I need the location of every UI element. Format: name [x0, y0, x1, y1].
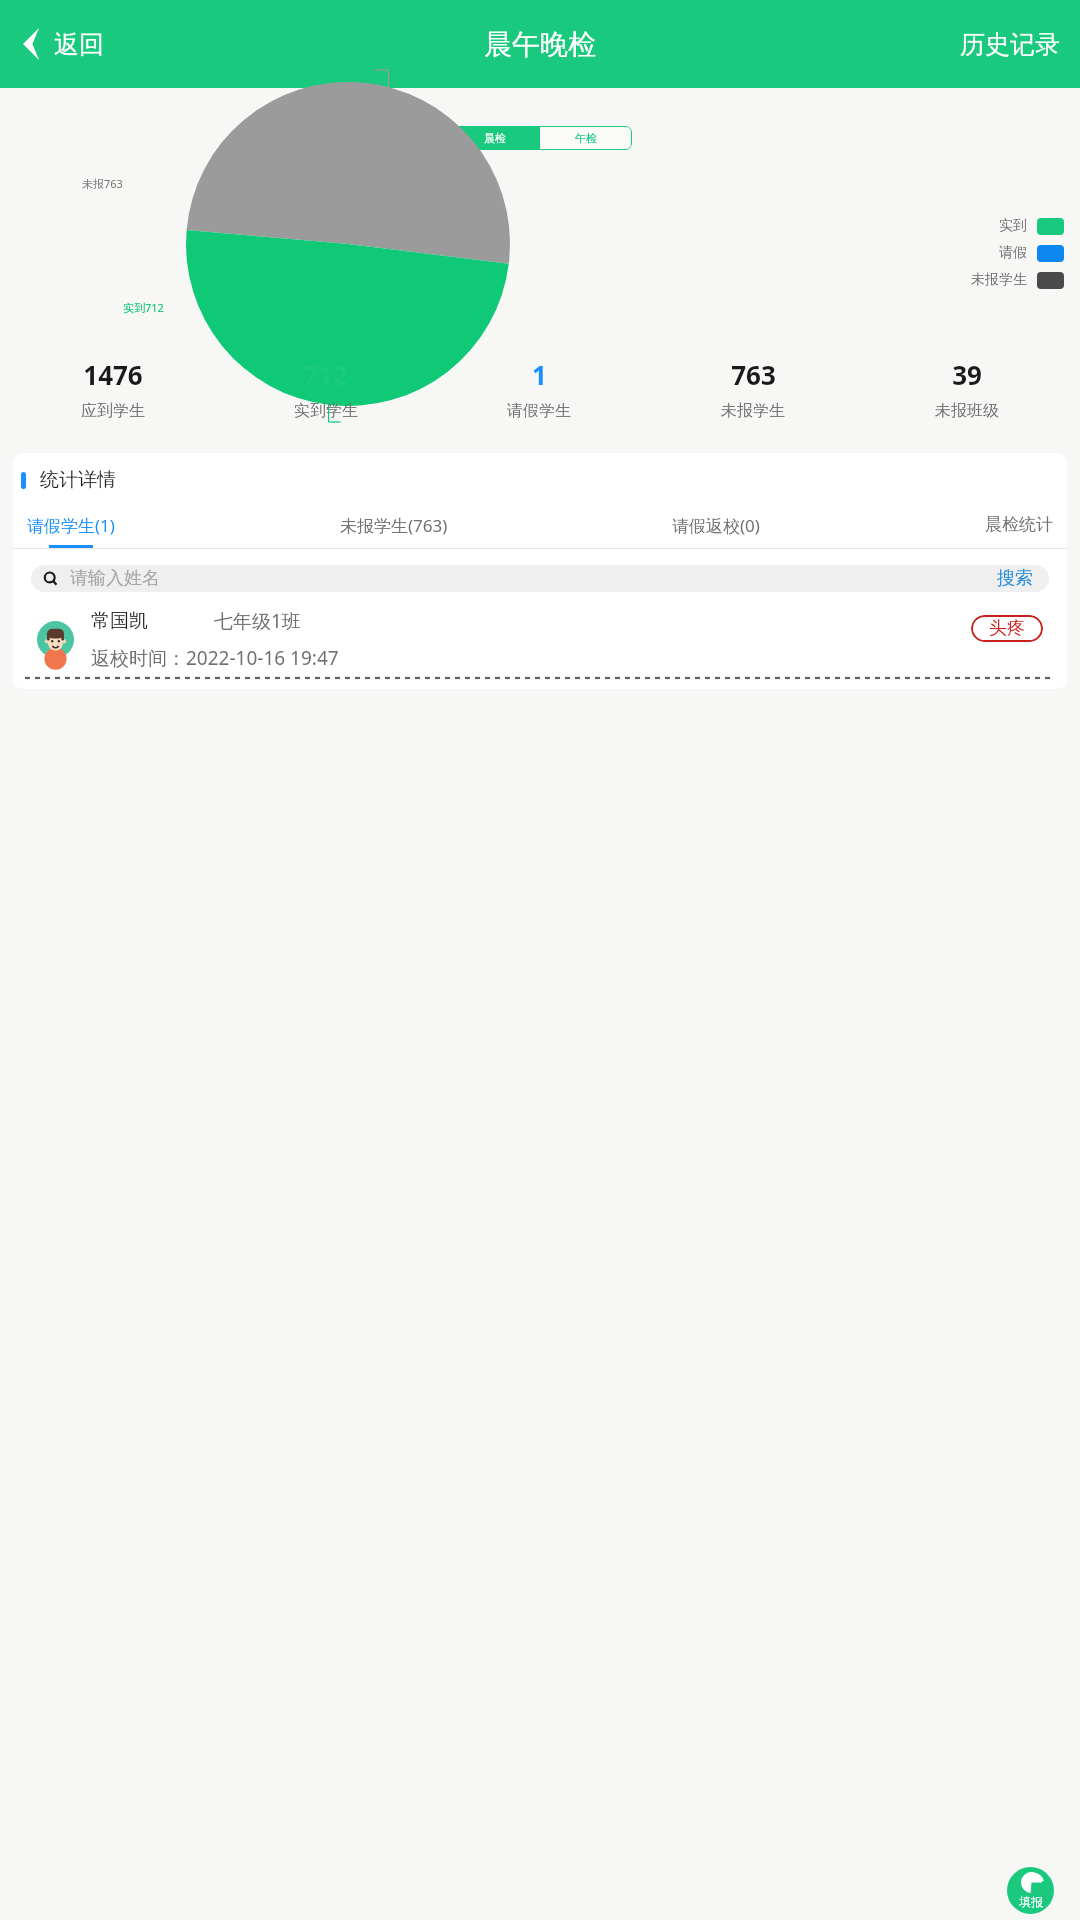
staticText: 实到: [999, 217, 1027, 235]
button[interactable]: 晨检: [449, 126, 540, 150]
staticText: 1476: [83, 357, 143, 392]
button[interactable]: 头疼: [971, 615, 1043, 642]
button[interactable]: 未报学生(763): [336, 514, 452, 548]
staticText: 实到学生: [294, 401, 358, 421]
button[interactable]: 请假学生(1): [23, 514, 119, 548]
staticText: 请假学生(1): [27, 514, 115, 537]
button[interactable]: 常国凯: [13, 608, 1067, 671]
button[interactable]: 1476: [6, 357, 219, 421]
staticText: 应到学生: [81, 401, 145, 421]
other: Search: [43, 571, 59, 587]
staticText: 未报学生: [971, 271, 1027, 289]
staticText: 晨检统计: [985, 514, 1053, 535]
staticText: 填报: [1019, 1894, 1043, 1909]
staticText: 午检: [575, 131, 597, 145]
staticText: 39: [952, 357, 982, 392]
staticText: 未报学生(763): [340, 514, 448, 537]
button[interactable]: Search: [31, 565, 1049, 592]
staticText: 请假: [999, 244, 1027, 262]
staticText: 晨午晚检: [484, 27, 596, 62]
button[interactable]: 填报: [1007, 1867, 1054, 1914]
staticText: 未报班级: [935, 401, 999, 421]
button[interactable]: 763: [646, 357, 860, 421]
button[interactable]: 午检: [540, 126, 632, 150]
staticText: 712: [303, 357, 348, 392]
staticText: 统计详情: [40, 468, 116, 492]
staticText: 返校时间：2022-10-16 19:47: [91, 645, 339, 671]
button[interactable]: 712: [219, 357, 432, 421]
staticText: 返回: [54, 29, 104, 60]
staticText: 未报学生: [721, 401, 785, 421]
button[interactable]: 请假返校(0): [668, 514, 764, 548]
staticText: 晨检: [484, 131, 506, 145]
staticText: 请假学生: [507, 401, 571, 421]
button[interactable]: 返回: [0, 18, 122, 70]
staticText: 头疼: [989, 617, 1025, 640]
button[interactable]: 1: [432, 357, 646, 421]
button[interactable]: 搜索: [991, 567, 1039, 590]
button[interactable]: 历史记录: [940, 17, 1080, 72]
staticText: 实到712: [123, 300, 164, 315]
staticText: 763: [731, 357, 776, 392]
button[interactable]: 晨检统计: [981, 514, 1057, 546]
button[interactable]: 39: [860, 357, 1074, 421]
staticText: 1: [532, 357, 547, 392]
staticText: 请输入姓名: [70, 567, 160, 590]
staticText: 请假返校(0): [672, 514, 760, 537]
staticText: 未报763: [82, 176, 123, 191]
staticText: 七年级1班: [214, 608, 301, 634]
staticText: 常国凯: [91, 609, 148, 633]
